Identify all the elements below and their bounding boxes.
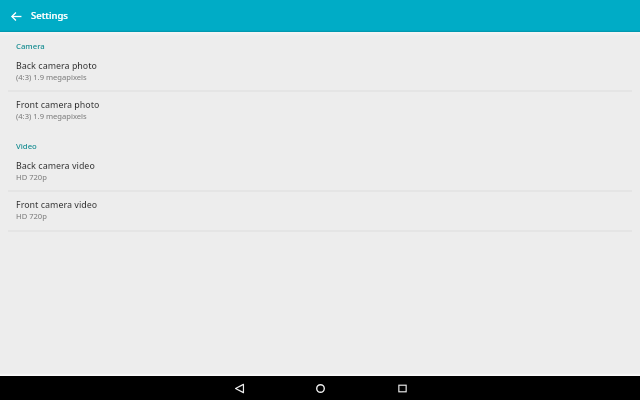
staticText: (4:3) 1.9 megapixels xyxy=(16,111,87,121)
staticText: Front camera photo xyxy=(16,99,100,111)
staticText: Settings xyxy=(31,9,68,22)
staticText: Video xyxy=(16,141,37,152)
button[interactable]: Back camera video xyxy=(0,152,640,190)
staticText: (4:3) 1.9 megapixels xyxy=(16,72,87,82)
button[interactable]: Home xyxy=(308,376,332,400)
staticText: Back camera video xyxy=(16,160,95,172)
button[interactable]: Front camera photo xyxy=(0,91,640,130)
button[interactable]: Navigate up xyxy=(5,5,27,27)
button[interactable]: Recent apps xyxy=(390,376,414,400)
staticText: HD 720p xyxy=(16,211,47,221)
button[interactable]: Back xyxy=(227,376,251,400)
button[interactable]: Front camera video xyxy=(0,191,640,230)
staticText: HD 720p xyxy=(16,172,47,182)
staticText: Front camera video xyxy=(16,199,98,211)
staticText: Camera xyxy=(16,41,45,52)
staticText: Back camera photo xyxy=(16,60,97,72)
button[interactable]: Back camera photo xyxy=(0,52,640,90)
